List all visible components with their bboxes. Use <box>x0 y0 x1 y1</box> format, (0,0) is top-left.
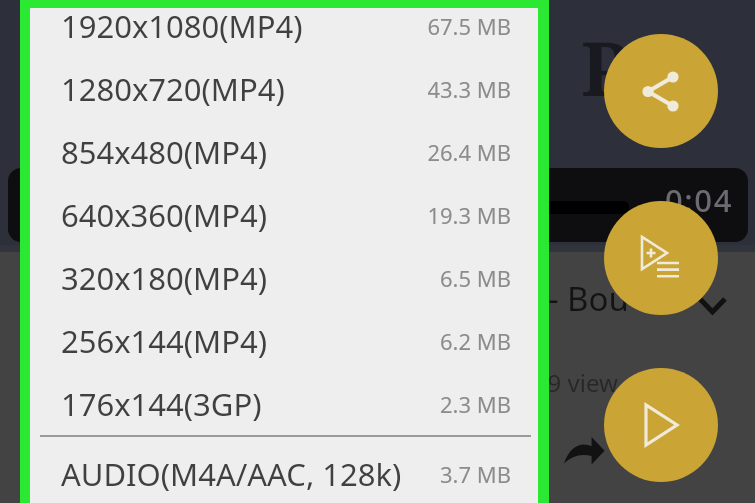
staticText: 3.7 MB <box>439 459 511 489</box>
button[interactable]: 256x144(MP4) <box>30 309 538 372</box>
staticText: 854x480(MP4) <box>61 131 267 173</box>
staticText: P <box>581 17 629 118</box>
staticText: 43.3 MB <box>427 74 511 104</box>
button[interactable]: Share <box>604 34 718 148</box>
staticText: 19.3 MB <box>427 200 511 230</box>
button[interactable]: Play <box>604 368 718 482</box>
staticText: 0:04 <box>665 179 734 221</box>
staticText: 26.4 MB <box>427 137 511 167</box>
staticText: 67.5 MB <box>427 11 511 41</box>
staticText: 1,239 view <box>500 366 618 399</box>
staticText: 176x144(3GP) <box>61 383 262 425</box>
staticText: Dinosaur - Bou <box>398 276 629 321</box>
button[interactable]: Add to playlist <box>604 201 718 315</box>
staticText: 640x360(MP4) <box>61 194 267 236</box>
staticText: 256x144(MP4) <box>61 320 267 362</box>
staticText: 1920x1080(MP4) <box>61 5 303 47</box>
button[interactable]: 640x360(MP4) <box>30 183 538 246</box>
button[interactable]: 1280x720(MP4) <box>30 57 538 120</box>
staticText: 2.3 MB <box>439 389 511 419</box>
staticText: 1280x720(MP4) <box>61 68 285 110</box>
button[interactable]: AUDIO(M4A/AAC, 128k) <box>30 441 538 503</box>
staticText: 6.5 MB <box>439 263 511 293</box>
staticText: 320x180(MP4) <box>61 257 267 299</box>
staticText: AUDIO(M4A/AAC, 128k) <box>61 453 402 495</box>
staticText: 6.2 MB <box>439 326 511 356</box>
button[interactable]: 320x180(MP4) <box>30 246 538 309</box>
button[interactable]: 176x144(3GP) <box>30 372 538 435</box>
button[interactable]: 1920x1080(MP4) <box>30 0 538 57</box>
button[interactable]: 854x480(MP4) <box>30 120 538 183</box>
